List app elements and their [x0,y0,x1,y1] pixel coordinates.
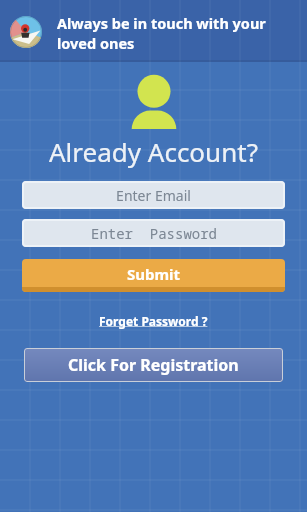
button[interactable]: Click For Registration [24,348,283,382]
other: App logo [10,16,42,48]
staticText: Click For Registration [68,354,239,376]
staticText: loved ones [57,33,135,53]
button[interactable]: Enter Password [22,219,285,247]
staticText: Submit [127,264,181,284]
button[interactable]: Forget Password ? [91,310,216,332]
staticText: Enter Email [116,186,191,205]
staticText: Forget Password ? [99,313,208,329]
staticText: Already Account? [49,134,258,169]
button[interactable]: Submit [22,259,285,292]
staticText: Always be in touch with your [57,13,266,33]
button[interactable]: Enter Email [22,181,285,209]
staticText: Enter Password [91,224,217,243]
